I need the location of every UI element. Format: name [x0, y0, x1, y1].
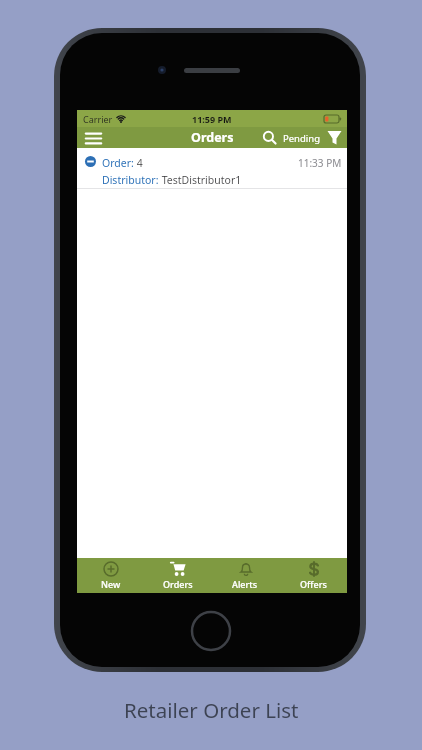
staticText: Orders: [163, 578, 193, 590]
button[interactable]: Alerts: [211, 558, 279, 593]
staticText: TestDistributor1: [159, 173, 242, 187]
button[interactable]: Order:: [77, 148, 347, 188]
button[interactable]: New: [77, 558, 144, 593]
staticText: Orders: [191, 129, 234, 146]
button[interactable]: [82, 128, 104, 148]
button[interactable]: [261, 128, 279, 148]
staticText: 11:33 PM: [298, 156, 342, 170]
staticText: Order:: [102, 156, 134, 170]
staticText: 11:59 PM: [192, 113, 232, 125]
staticText: Retailer Order List: [124, 696, 299, 724]
button[interactable]: Orders: [144, 558, 211, 593]
button[interactable]: Offers: [279, 558, 347, 593]
staticText: Distributor:: [102, 173, 159, 187]
staticText: Carrier: [83, 113, 113, 125]
staticText: Alerts: [232, 578, 258, 590]
staticText: Offers: [300, 578, 327, 590]
button[interactable]: Pending: [283, 132, 320, 145]
button[interactable]: [325, 128, 343, 148]
staticText: Pending: [283, 132, 320, 145]
staticText: New: [101, 578, 121, 590]
staticText: 4: [134, 156, 143, 170]
